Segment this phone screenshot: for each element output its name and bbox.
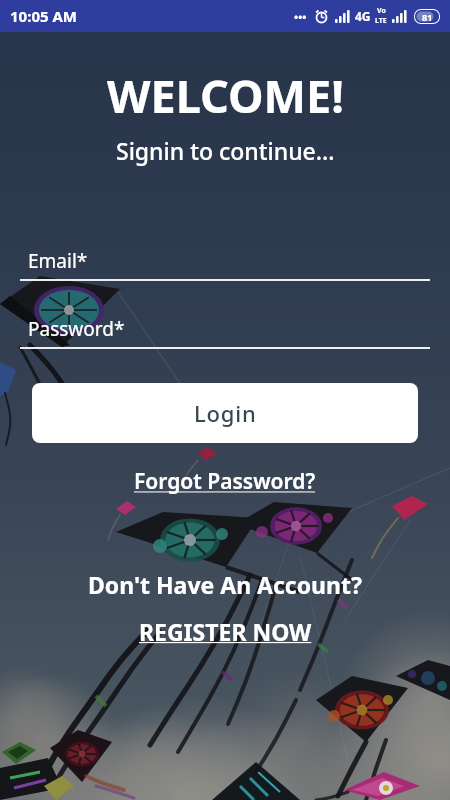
staticText: Login [194,398,257,428]
staticText: 4G [355,8,371,24]
button[interactable]: REGISTER NOW [139,616,312,647]
button[interactable]: Forgot Password? [134,467,316,496]
staticText: Vo [377,6,386,16]
staticText: WELCOME! [107,65,344,126]
staticText: Don't Have An Account? [88,569,362,600]
staticText: LTE [375,16,387,26]
staticText: Signin to continue... [116,135,335,166]
staticText: Email* [28,248,88,274]
button[interactable]: Email* [20,248,430,281]
staticText: Forgot Password? [134,467,316,496]
staticText: 10:05 AM [10,6,77,26]
staticText: REGISTER NOW [139,616,312,647]
button[interactable]: Login [32,383,418,443]
staticText: ••• [294,9,307,24]
staticText: 81 [422,11,433,23]
staticText: Password* [28,316,125,342]
button[interactable]: Password* [20,316,430,349]
